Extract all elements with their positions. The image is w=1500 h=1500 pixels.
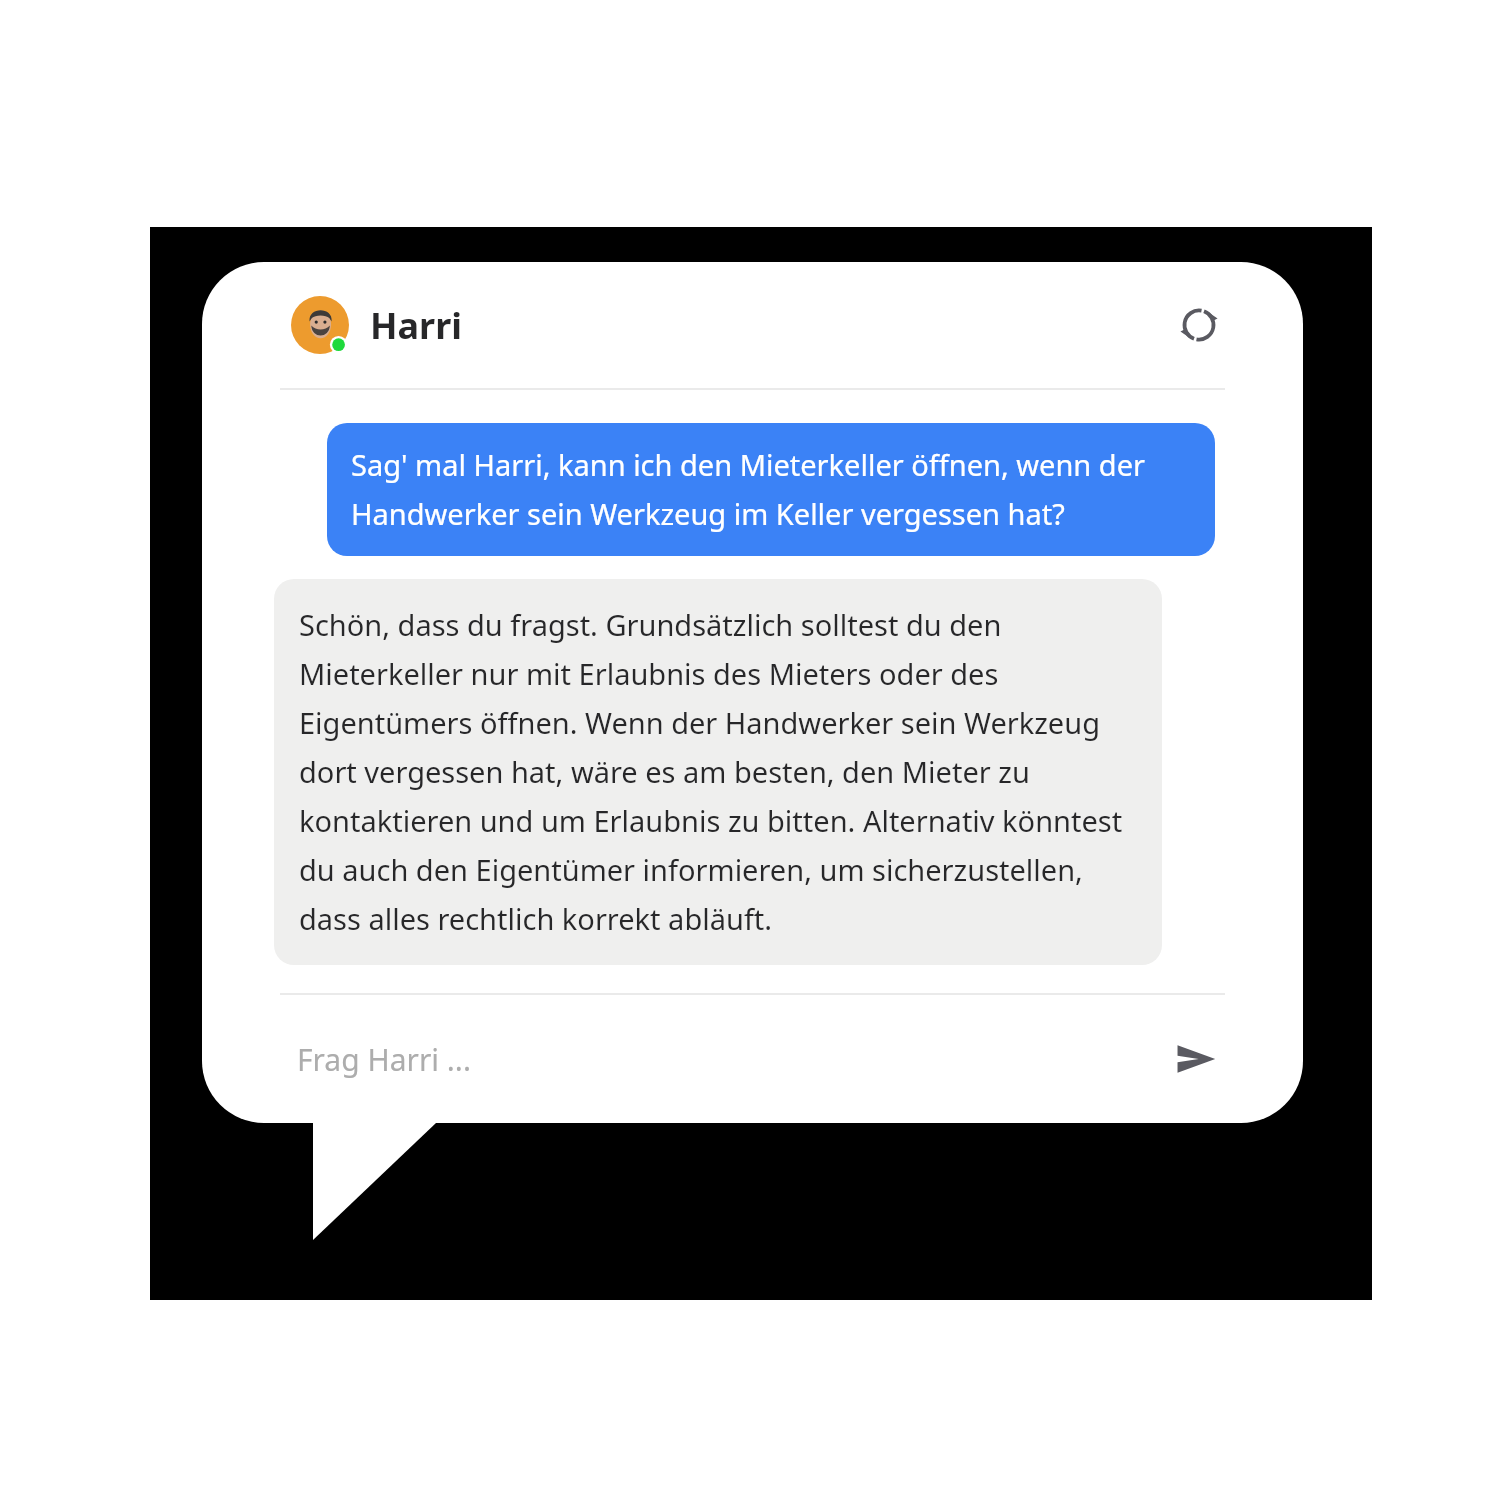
button[interactable]: Frag Harri ... <box>297 1039 1165 1080</box>
staticText: Harri <box>370 301 463 350</box>
staticText: Sag' mal Harri, kann ich den Mieterkelle… <box>351 445 1191 534</box>
button[interactable]: Schön, dass du fragst. Grundsätzlich sol… <box>274 579 1162 965</box>
button[interactable]: Send <box>1165 1029 1225 1089</box>
staticText: Frag Harri ... <box>297 1039 471 1080</box>
staticText: Schön, dass du fragst. Grundsätzlich sol… <box>299 605 1137 939</box>
button[interactable]: Sag' mal Harri, kann ich den Mieterkelle… <box>327 423 1215 556</box>
button[interactable]: Refresh <box>1173 299 1225 351</box>
